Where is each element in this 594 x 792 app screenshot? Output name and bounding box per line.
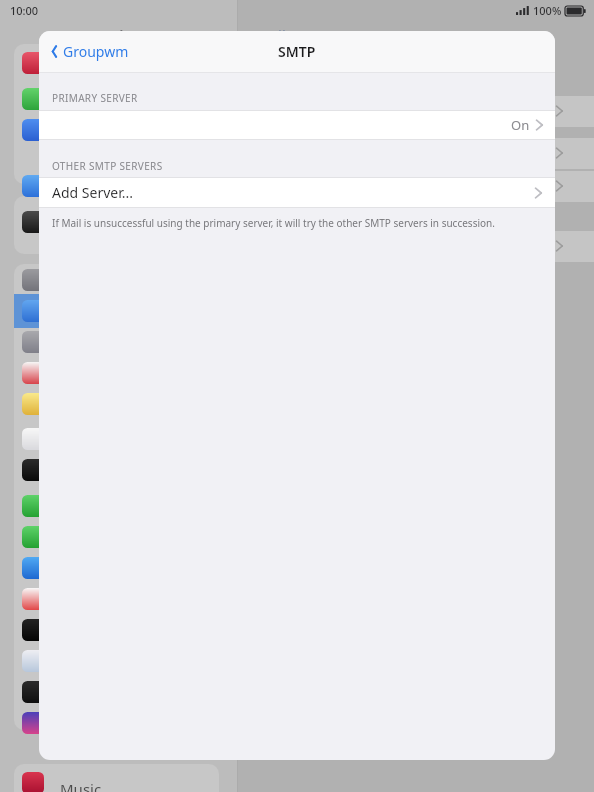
staticText: Mail [256, 25, 286, 45]
staticText: 10:00 [10, 3, 39, 18]
button[interactable]: Groupwm [39, 37, 139, 66]
staticText: Add Server... [52, 183, 133, 202]
button[interactable]: Primary server, On [39, 111, 555, 139]
staticText: Settings [90, 25, 150, 45]
staticText: OTHER SMTP SERVERS [52, 159, 163, 173]
staticText: SMTP [278, 42, 316, 61]
staticText: Music [60, 779, 102, 792]
staticText: 100% [533, 3, 562, 18]
button[interactable]: Add Server... [39, 178, 555, 207]
staticText: On [511, 116, 530, 134]
staticText: If Mail is unsuccessful using the primar… [52, 216, 531, 230]
staticText: Groupwm [63, 42, 129, 61]
staticText: PRIMARY SERVER [52, 91, 138, 105]
staticText: Accounts [386, 25, 454, 45]
